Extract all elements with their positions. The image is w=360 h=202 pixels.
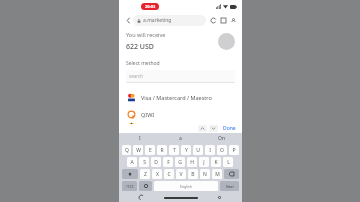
button[interactable]: a.marketing <box>133 15 206 26</box>
button[interactable]: I <box>205 145 215 155</box>
button[interactable]: Reload <box>208 15 218 25</box>
staticText: P <box>232 147 236 154</box>
button[interactable]: Tabs <box>218 15 228 25</box>
staticText: a <box>179 135 182 142</box>
staticText: I <box>139 135 141 142</box>
button[interactable]: Yandex.Money <box>119 123 242 124</box>
button[interactable]: R <box>157 145 167 155</box>
staticText: S <box>143 159 146 166</box>
staticText: X <box>156 171 159 178</box>
button[interactable]: Next field <box>209 125 218 132</box>
staticText: English <box>180 184 192 189</box>
staticText: Q <box>125 147 129 154</box>
staticText: D <box>154 159 158 166</box>
staticText: ?123 <box>126 184 134 189</box>
button[interactable]: Y <box>181 145 191 155</box>
button[interactable]: S <box>139 157 149 167</box>
staticText: L <box>227 159 230 166</box>
button[interactable]: Done <box>221 124 238 133</box>
button[interactable]: H <box>187 157 197 167</box>
button[interactable]: P <box>229 145 239 155</box>
staticText: M <box>215 171 220 178</box>
staticText: 622 USD <box>126 42 154 52</box>
button[interactable]: Shift <box>122 169 138 179</box>
button[interactable]: A <box>127 157 137 167</box>
staticText: You will receive <box>126 31 166 38</box>
staticText: F <box>167 159 170 166</box>
staticText: Y <box>185 147 188 154</box>
button[interactable]: Visa / Mastercard / Maestro <box>119 89 242 106</box>
button[interactable]: D <box>151 157 161 167</box>
button[interactable]: X <box>152 169 162 179</box>
button[interactable]: F <box>163 157 173 167</box>
button[interactable]: a <box>160 133 201 143</box>
button[interactable]: C <box>164 169 174 179</box>
staticText: V <box>179 171 183 178</box>
staticText: I <box>209 147 211 154</box>
button[interactable]: Q <box>122 145 131 155</box>
staticText: Next <box>226 184 234 189</box>
button[interactable]: B <box>188 169 198 179</box>
staticText: J <box>203 159 205 166</box>
staticText: Select method <box>126 60 160 67</box>
staticText: U <box>196 147 200 154</box>
staticText: O <box>220 147 224 154</box>
button[interactable]: O <box>217 145 227 155</box>
button[interactable]: On <box>201 133 242 143</box>
button[interactable]: Z <box>140 169 150 179</box>
staticText: B <box>191 171 195 178</box>
button[interactable]: W <box>133 145 143 155</box>
staticText: Done <box>223 125 236 132</box>
button[interactable]: M <box>212 169 222 179</box>
button[interactable]: search <box>126 70 235 82</box>
button[interactable]: Recents <box>217 195 222 200</box>
staticText: W <box>136 147 141 154</box>
staticText: Visa / Mastercard / Maestro <box>141 94 212 101</box>
button[interactable]: J <box>199 157 209 167</box>
button[interactable]: K <box>211 157 221 167</box>
staticText: G <box>178 159 182 166</box>
staticText: a.marketing <box>143 17 172 24</box>
button[interactable]: Previous field <box>198 125 207 132</box>
staticText: H <box>190 159 194 166</box>
button[interactable]: Profile <box>228 15 238 25</box>
button[interactable]: T <box>169 145 179 155</box>
staticText: E <box>149 147 152 154</box>
button[interactable]: Back <box>123 15 133 25</box>
button[interactable]: Home <box>164 197 198 199</box>
staticText: K <box>214 159 218 166</box>
staticText: Z <box>144 171 147 178</box>
button[interactable]: Back <box>139 195 144 200</box>
button[interactable]: I <box>119 133 160 143</box>
button[interactable]: G <box>175 157 185 167</box>
button[interactable]: L <box>223 157 233 167</box>
staticText: N <box>203 171 207 178</box>
button[interactable]: Backspace <box>224 169 239 179</box>
button[interactable]: U <box>193 145 203 155</box>
button[interactable]: V <box>176 169 186 179</box>
staticText: R <box>160 147 164 154</box>
button[interactable]: Next <box>220 181 239 191</box>
button[interactable]: QIWI <box>119 106 242 123</box>
staticText: C <box>167 171 171 178</box>
staticText: search <box>129 73 143 79</box>
button[interactable]: Emoji <box>139 181 152 191</box>
button[interactable]: Space <box>154 181 218 191</box>
staticText: A <box>130 159 134 166</box>
staticText: 20:03 <box>145 4 156 9</box>
button[interactable]: N <box>200 169 210 179</box>
button[interactable]: E <box>145 145 155 155</box>
button[interactable]: Account avatar <box>218 33 235 50</box>
staticText: QIWI <box>141 111 155 118</box>
staticText: T <box>173 147 176 154</box>
button[interactable]: Symbols <box>122 181 137 191</box>
staticText: On <box>218 135 225 142</box>
